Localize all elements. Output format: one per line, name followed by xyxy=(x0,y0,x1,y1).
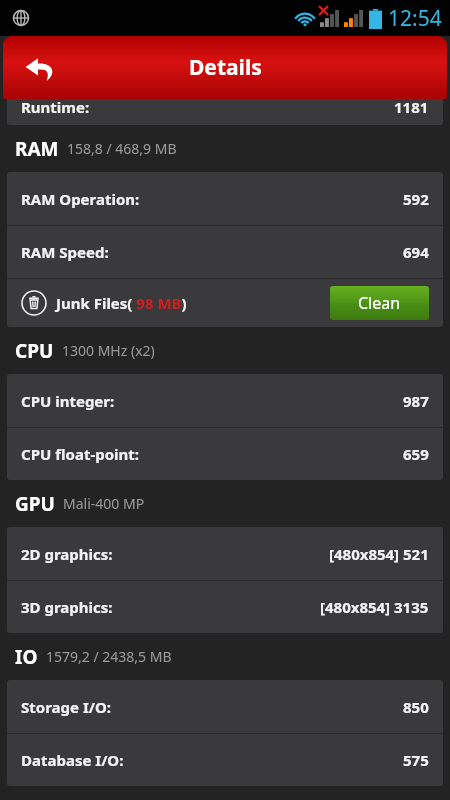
button[interactable]: Back xyxy=(17,45,63,91)
button[interactable]: RAM Speed: xyxy=(7,226,443,278)
staticText: CPU xyxy=(15,338,54,364)
button[interactable]: Database I/O: xyxy=(7,734,443,786)
button[interactable]: 2D graphics: xyxy=(7,527,443,580)
staticText: IO xyxy=(15,644,38,670)
button[interactable]: CPU float-point: xyxy=(7,428,443,480)
button[interactable]: Clean xyxy=(330,286,429,320)
staticText: [480x854] 3135 xyxy=(320,597,429,617)
staticText: Clean xyxy=(358,292,401,314)
staticText: 850 xyxy=(403,697,429,717)
staticText: 575 xyxy=(403,750,429,770)
staticText: Mali-400 MP xyxy=(63,494,145,513)
button[interactable]: 3D graphics: xyxy=(7,581,443,633)
staticText: 1579,2 / 2438,5 MB xyxy=(46,647,172,666)
staticText: Storage I/O: xyxy=(21,697,112,717)
button[interactable]: Runtime: xyxy=(7,99,443,125)
staticText: CPU float-point: xyxy=(21,444,140,464)
staticText: 659 xyxy=(403,444,429,464)
staticText: Database I/O: xyxy=(21,750,124,770)
staticText: Details xyxy=(189,53,262,82)
staticText: Junk Files( 98 MB) xyxy=(56,293,187,313)
staticText: 158,8 / 468,9 MB xyxy=(67,139,177,158)
staticText: CPU integer: xyxy=(21,391,115,411)
button[interactable]: RAM Operation: xyxy=(7,172,443,225)
button[interactable]: Storage I/O: xyxy=(7,680,443,733)
staticText: Runtime: xyxy=(21,99,90,117)
staticText: 2D graphics: xyxy=(21,544,113,564)
staticText: 3D graphics: xyxy=(21,597,113,617)
staticText: [480x854] 521 xyxy=(329,544,429,564)
staticText: RAM Operation: xyxy=(21,189,140,209)
staticText: 592 xyxy=(403,189,429,209)
staticText: 1300 MHz (x2) xyxy=(62,341,155,360)
staticText: 987 xyxy=(403,391,429,411)
staticText: RAM Speed: xyxy=(21,242,109,262)
staticText: 1181 xyxy=(394,99,429,117)
staticText: RAM xyxy=(15,136,59,162)
staticText: 694 xyxy=(403,242,429,262)
staticText: 12:54 xyxy=(388,4,442,33)
staticText: GPU xyxy=(15,491,55,517)
button[interactable]: CPU integer: xyxy=(7,374,443,427)
